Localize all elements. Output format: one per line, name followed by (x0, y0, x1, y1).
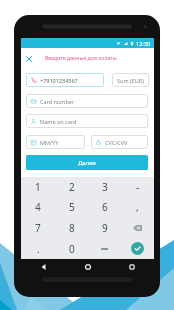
staticText: Card number (40, 98, 75, 105)
staticText: CVC/CVV (105, 139, 128, 146)
button[interactable]: Sum (EUR) (112, 73, 149, 87)
staticText: Введите данные для оплаты (45, 54, 117, 61)
button[interactable]: 8 (55, 217, 88, 238)
button[interactable]: Home (66, 259, 110, 275)
staticText: MM/YY (40, 139, 59, 146)
button[interactable]: 3 (88, 177, 121, 197)
button[interactable]: Confirm (121, 238, 154, 259)
staticText: 1 (35, 180, 41, 194)
button[interactable]: Backspace (121, 217, 154, 238)
staticText: - (136, 180, 140, 194)
button[interactable]: Close (25, 55, 33, 63)
staticText: 7 (35, 221, 41, 235)
other: Backspace (133, 225, 142, 231)
button[interactable]: CVC/CVV (91, 135, 148, 149)
button[interactable]: 7 (21, 217, 55, 238)
button[interactable]: 0 (55, 238, 88, 259)
staticText: 8 (69, 221, 75, 235)
staticText: Name on card (40, 118, 77, 125)
staticText: 12:30 (136, 40, 151, 47)
button[interactable]: Card number (26, 94, 148, 108)
other: Confirm (131, 242, 144, 255)
staticText: Sum (EUR) (117, 77, 144, 84)
staticText: 4 (35, 200, 41, 214)
staticText: 9 (102, 221, 108, 235)
button[interactable]: , (121, 197, 154, 217)
button[interactable]: MM/YY (26, 135, 85, 149)
staticText: 2 (69, 180, 75, 194)
staticText: 5 (69, 200, 75, 214)
staticText: , (136, 200, 139, 214)
staticText: 6 (102, 200, 108, 214)
button[interactable]: Back (21, 259, 66, 275)
button[interactable] (88, 238, 121, 259)
staticText: +79101234567 (40, 77, 78, 84)
button[interactable]: 1 (21, 177, 55, 197)
staticText: 0 (69, 242, 75, 256)
staticText: Далее (78, 159, 96, 167)
button[interactable]: 5 (55, 197, 88, 217)
staticText: . (37, 242, 40, 256)
button[interactable]: Далее (26, 155, 148, 170)
button[interactable]: Name on card (26, 114, 148, 128)
button[interactable]: +79101234567 (26, 73, 104, 87)
button[interactable]: . (21, 238, 55, 259)
staticText: 3 (102, 180, 108, 194)
button[interactable]: 6 (88, 197, 121, 217)
button[interactable]: 4 (21, 197, 55, 217)
button[interactable]: 2 (55, 177, 88, 197)
button[interactable]: Recents (110, 259, 154, 275)
button[interactable]: - (121, 177, 154, 197)
button[interactable]: 9 (88, 217, 121, 238)
